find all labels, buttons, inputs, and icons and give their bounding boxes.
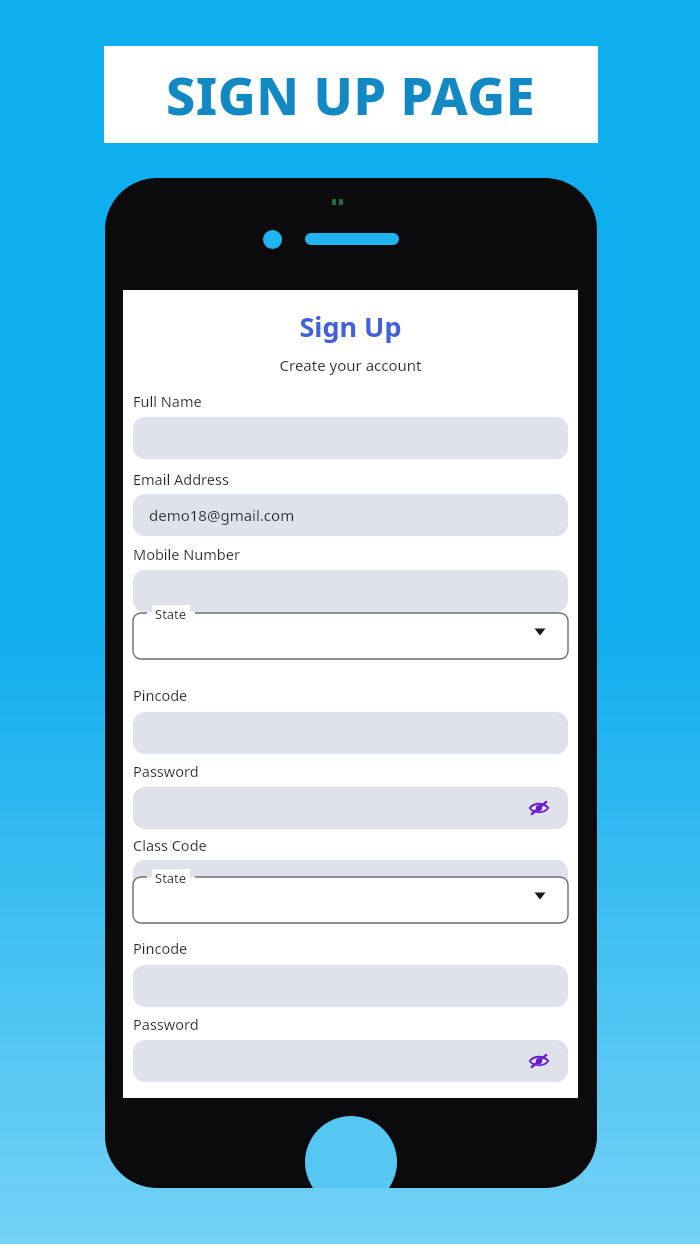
button[interactable]: demo18@gmail.com bbox=[133, 494, 568, 536]
staticText: State bbox=[155, 605, 187, 623]
staticText: Class Code bbox=[133, 835, 207, 855]
button[interactable]: Home bbox=[305, 1116, 397, 1188]
staticText: Password bbox=[133, 761, 199, 781]
button[interactable]: State bbox=[133, 607, 568, 659]
staticText: Mobile Number bbox=[133, 544, 240, 564]
staticText: Pincode bbox=[133, 938, 188, 958]
staticText: demo18@gmail.com bbox=[149, 505, 295, 525]
button[interactable]: State bbox=[133, 871, 568, 923]
button[interactable]: Toggle password visibility bbox=[133, 1040, 568, 1082]
button[interactable] bbox=[133, 570, 568, 612]
staticText: Sign Up bbox=[123, 308, 578, 345]
staticText: Create your account bbox=[123, 355, 578, 375]
staticText: Pincode bbox=[133, 685, 188, 705]
button[interactable]: Toggle password visibility bbox=[526, 1048, 552, 1074]
staticText: State bbox=[155, 869, 187, 887]
staticText: Full Name bbox=[133, 391, 202, 411]
staticText: Email Address bbox=[133, 469, 229, 489]
button[interactable]: Toggle password visibility bbox=[526, 795, 552, 821]
button[interactable] bbox=[133, 860, 568, 902]
staticText: Password bbox=[133, 1014, 199, 1034]
staticText: SIGN UP PAGE bbox=[166, 59, 536, 130]
button[interactable]: Toggle password visibility bbox=[133, 787, 568, 829]
